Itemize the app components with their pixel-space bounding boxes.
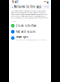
staticText: Clean interface	[16, 24, 37, 27]
staticText: Fast and secure	[16, 30, 36, 33]
button[interactable]: Fast and secure	[11, 29, 49, 34]
staticText: ex ea commodo consequat duis aute irure …	[11, 17, 48, 19]
staticText: Lorem ipsum dolor sit amet, consectetur …	[11, 10, 45, 12]
staticText: Smart sync	[16, 35, 28, 39]
staticText: dolore magna aliqua. Ut enim ad minim ve…	[11, 13, 48, 15]
staticText: ‹	[12, 4, 13, 9]
button[interactable]: More	[44, 5, 47, 8]
button[interactable]: Close	[47, 5, 49, 8]
staticText: •••	[43, 0, 46, 4]
staticText: Welcome to the app	[13, 5, 41, 8]
button[interactable]: Back	[11, 5, 13, 9]
button[interactable]: Smart sync	[11, 35, 49, 41]
staticText: ▮	[47, 1, 48, 4]
staticText: 9:41	[12, 0, 19, 4]
staticText: elit, sed do eiusmod tempor incididunt u…	[11, 12, 46, 14]
staticText: Section	[11, 20, 16, 22]
staticText: Keeps your content updated across device…	[16, 39, 47, 41]
button[interactable]: Clean interface	[11, 23, 49, 28]
staticText: nostrud exercitation ullamco laboris nis…	[11, 15, 46, 17]
